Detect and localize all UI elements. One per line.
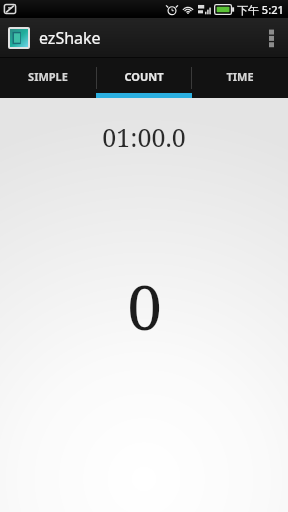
staticText: SIMPLE xyxy=(28,69,68,84)
staticText: ezShake xyxy=(39,27,101,49)
staticText: COUNT xyxy=(124,69,164,84)
staticText: 下午 5:21 xyxy=(237,2,284,17)
staticText: 01:00.0 xyxy=(102,120,186,154)
staticText: 0 xyxy=(127,264,162,348)
button[interactable]: COUNT xyxy=(96,58,192,98)
button[interactable]: SIMPLE xyxy=(0,58,96,98)
button[interactable]: TIME xyxy=(192,58,288,98)
staticText: TIME xyxy=(226,69,254,84)
button[interactable]: More options xyxy=(254,18,288,58)
